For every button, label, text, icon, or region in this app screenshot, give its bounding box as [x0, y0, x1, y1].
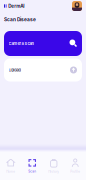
button[interactable]: Camera Scan: [4, 31, 82, 56]
staticText: Upload: [8, 68, 20, 72]
staticText: Camera Scan: [8, 41, 33, 46]
button[interactable]: Upload: [4, 58, 82, 81]
button[interactable]: Profile: [72, 1, 82, 11]
staticText: Scan: [28, 169, 36, 173]
staticText: Scan Disease: [4, 17, 36, 22]
button[interactable]: Profile: [64, 152, 86, 180]
staticText: History: [48, 170, 59, 173]
staticText: Profile: [70, 170, 80, 173]
button[interactable]: Scan: [21, 152, 43, 180]
staticText: Home: [6, 170, 15, 173]
button[interactable]: History: [43, 152, 64, 180]
staticText: DermAI: [8, 3, 24, 9]
button[interactable]: Home: [0, 152, 21, 180]
